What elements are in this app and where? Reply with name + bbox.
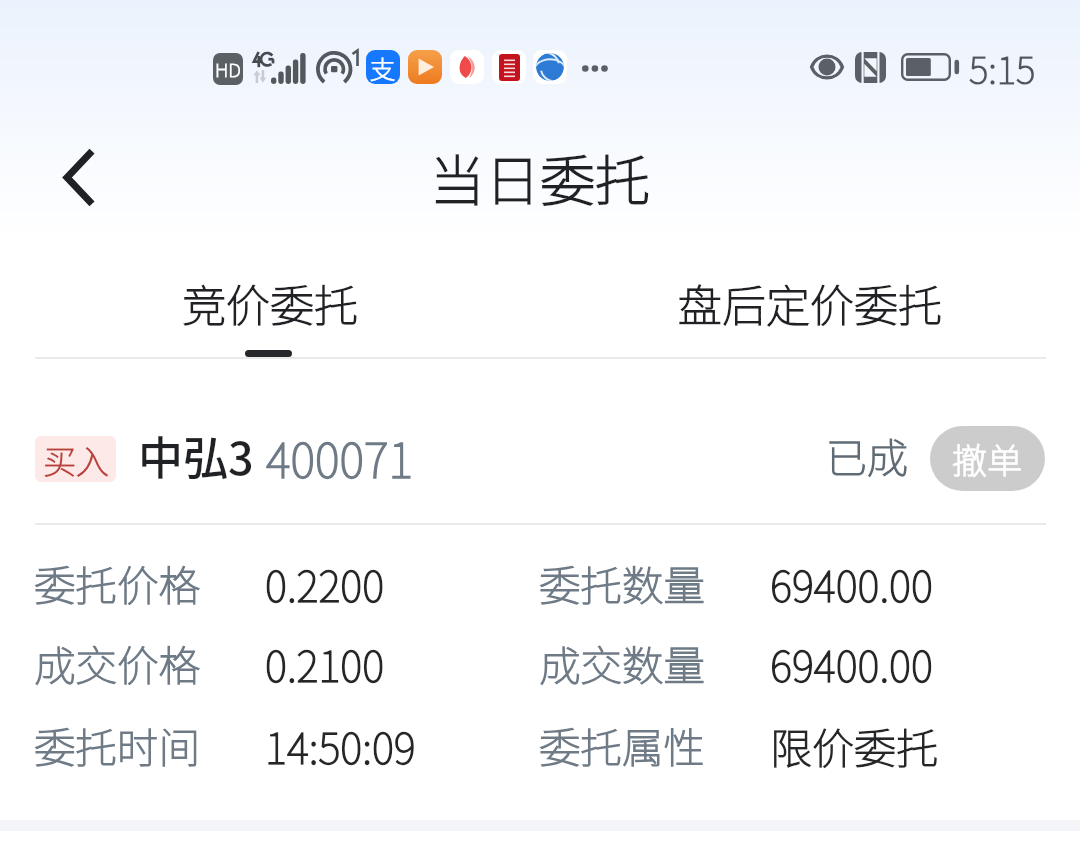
- staticText: 400071: [266, 423, 413, 491]
- staticText: 当日委托: [430, 137, 651, 217]
- button[interactable]: 盘后定价委托: [540, 240, 1080, 360]
- button[interactable]: 竞价委托: [0, 240, 540, 360]
- staticText: 69400.00: [770, 553, 933, 614]
- staticText: 委托价格: [34, 553, 201, 613]
- staticText: 14:50:09: [265, 715, 416, 776]
- staticText: 竞价委托: [182, 271, 358, 335]
- staticText: 委托数量: [539, 553, 706, 613]
- staticText: 盘后定价委托: [678, 271, 942, 335]
- staticText: 委托属性: [539, 715, 706, 775]
- button[interactable]: 撤单: [930, 426, 1045, 491]
- staticText: 0.2200: [265, 553, 385, 614]
- staticText: 撤单: [952, 433, 1023, 484]
- staticText: HD: [215, 55, 241, 83]
- staticText: 限价委托: [770, 715, 939, 776]
- staticText: 委托时间: [34, 715, 201, 775]
- staticText: 成交数量: [539, 633, 706, 693]
- button[interactable]: 买入: [0, 360, 1080, 525]
- staticText: 支: [370, 50, 396, 84]
- staticText: 中弘3: [138, 423, 254, 488]
- staticText: 0.2100: [265, 633, 385, 694]
- button[interactable]: Back: [42, 141, 114, 213]
- staticText: 成交价格: [34, 633, 201, 693]
- staticText: 买入: [43, 436, 109, 482]
- staticText: 已成: [826, 425, 908, 484]
- staticText: 5:15: [969, 41, 1036, 95]
- staticText: 69400.00: [770, 633, 933, 694]
